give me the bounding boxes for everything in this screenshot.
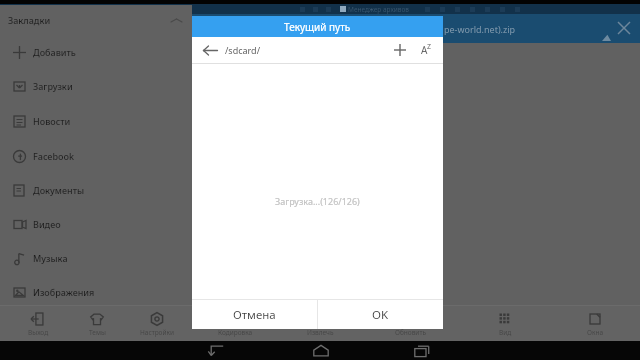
- button[interactable]: Настройки: [123, 306, 191, 341]
- staticText: Обновить: [395, 328, 426, 337]
- button[interactable]: Collapse: [170, 14, 183, 27]
- staticText: pe-world.net).zip: [444, 23, 516, 35]
- staticText: Изображения: [33, 286, 95, 298]
- staticText: Окна: [587, 328, 604, 337]
- staticText: Документы: [33, 184, 85, 196]
- staticText: Отмена: [233, 307, 276, 323]
- button[interactable]: Обновить: [376, 306, 444, 341]
- staticText: Загрузки: [33, 80, 73, 92]
- button[interactable]: Back: [208, 343, 224, 359]
- staticText: Z: [427, 42, 432, 52]
- button[interactable]: Извлечь: [286, 306, 354, 341]
- staticText: Извлечь: [307, 328, 334, 337]
- staticText: Текущий путь: [284, 20, 351, 34]
- button[interactable]: Музыка: [0, 241, 192, 275]
- staticText: Видео: [33, 218, 61, 230]
- button[interactable]: Home: [313, 343, 329, 359]
- staticText: Новости: [33, 115, 71, 127]
- staticText: Кодировка: [218, 328, 253, 337]
- button[interactable]: OK: [318, 300, 443, 329]
- button[interactable]: Видео: [0, 207, 192, 241]
- button[interactable]: Кодировка: [201, 306, 269, 341]
- staticText: Настройки: [140, 328, 175, 337]
- staticText: Выход: [28, 328, 49, 337]
- button[interactable]: Загрузки: [0, 69, 192, 103]
- button[interactable]: Sort: [418, 41, 436, 59]
- staticText: Менеджер архивов: [348, 5, 409, 14]
- staticText: Facebook: [33, 150, 75, 162]
- button[interactable]: Новости: [0, 104, 192, 138]
- staticText: /sdcard/: [225, 44, 260, 56]
- staticText: Вид: [499, 328, 512, 337]
- button[interactable]: Close: [612, 16, 636, 40]
- button[interactable]: Выход: [4, 306, 72, 341]
- staticText: Загрузка...(126/126): [275, 195, 360, 207]
- staticText: A: [421, 43, 428, 57]
- button[interactable]: Up one level: [203, 43, 218, 58]
- staticText: Закладки: [8, 14, 51, 26]
- button[interactable]: Закладки: [0, 5, 192, 35]
- button[interactable]: Изображения: [0, 275, 192, 309]
- button[interactable]: Facebook: [0, 139, 192, 173]
- staticText: Темы: [89, 328, 106, 337]
- button[interactable]: Recents: [414, 343, 430, 359]
- button[interactable]: Окна: [561, 306, 629, 341]
- staticText: Добавить: [33, 46, 76, 58]
- staticText: Музыка: [33, 252, 68, 264]
- staticText: OK: [372, 307, 389, 323]
- button[interactable]: Отмена: [192, 300, 317, 329]
- button[interactable]: New folder: [391, 41, 409, 59]
- button[interactable]: Документы: [0, 173, 192, 207]
- button[interactable]: Добавить: [0, 35, 192, 69]
- button[interactable]: Вид: [471, 306, 539, 341]
- button[interactable]: Темы: [63, 306, 131, 341]
